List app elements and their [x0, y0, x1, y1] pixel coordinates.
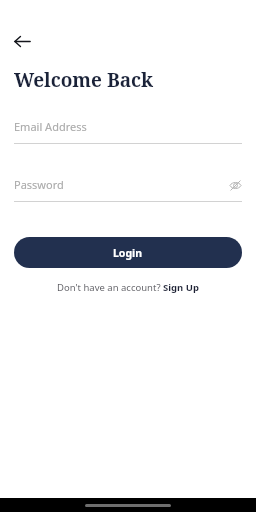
- button[interactable]: Email Address: [14, 119, 242, 144]
- button[interactable]: Login: [14, 237, 242, 268]
- button[interactable]: Back: [9, 28, 35, 54]
- staticText: Don't have an account?: [57, 281, 163, 294]
- button[interactable]: Show password: [228, 178, 242, 192]
- staticText: Password: [14, 177, 228, 192]
- button[interactable]: Password: [14, 177, 242, 202]
- staticText: Login: [113, 246, 143, 260]
- staticText: Welcome Back: [14, 67, 154, 93]
- staticText: Email Address: [14, 119, 87, 134]
- staticText: Sign Up: [163, 281, 199, 294]
- button[interactable]: Sign Up: [163, 281, 199, 294]
